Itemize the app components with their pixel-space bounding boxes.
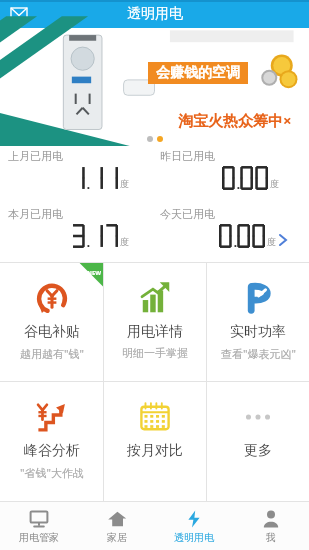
staticText: 查看"爆表元凶" (221, 346, 296, 361)
staticText: 谷电补贴 (24, 323, 80, 341)
button[interactable]: 实时功率 (207, 263, 309, 381)
staticText: 度 (120, 236, 129, 247)
staticText: 度 (270, 178, 279, 189)
button[interactable]: Messages (6, 1, 32, 27)
button[interactable]: 更多 (207, 382, 309, 501)
staticText: 会赚钱的空调 (156, 64, 240, 82)
button[interactable]: 本月已用电 (0, 204, 309, 262)
button[interactable]: 谷电补贴 (0, 263, 103, 381)
staticText: 明细一手掌握 (122, 346, 188, 360)
staticText: 用电管家 (19, 531, 59, 544)
button[interactable]: 家居 (78, 502, 155, 550)
button[interactable]: 我 (232, 502, 309, 550)
staticText: 家居 (107, 531, 127, 544)
staticText: 今天已用电 (160, 207, 215, 221)
staticText: 更多 (244, 442, 272, 460)
button[interactable]: 用电详情 (104, 263, 206, 381)
button[interactable]: 按月对比 (104, 382, 206, 501)
button[interactable]: 透明用电 (155, 502, 232, 550)
button[interactable]: 峰谷分析 (0, 382, 103, 501)
staticText: 按月对比 (127, 442, 183, 460)
staticText: 上月已用电 (8, 149, 63, 163)
staticText: 本月已用电 (8, 207, 63, 221)
staticText: 实时功率 (230, 323, 286, 341)
button[interactable]: 会赚钱的空调 (0, 28, 309, 146)
staticText: "省钱"大作战 (20, 465, 84, 480)
staticText: 透明用电 (174, 531, 214, 544)
staticText: 透明用电 (127, 5, 183, 23)
button[interactable]: 用电管家 (0, 502, 78, 550)
staticText: 用电详情 (127, 323, 183, 341)
staticText: 度 (267, 236, 276, 247)
staticText: 淘宝火热众筹中× (178, 110, 292, 130)
staticText: 昨日已用电 (160, 149, 215, 163)
staticText: 度 (120, 178, 129, 189)
staticText: 我 (266, 531, 276, 544)
button[interactable]: 上月已用电 (0, 146, 309, 204)
staticText: 峰谷分析 (24, 442, 80, 460)
staticText: NEW (87, 269, 102, 277)
staticText: 越用越有"钱" (20, 346, 84, 361)
